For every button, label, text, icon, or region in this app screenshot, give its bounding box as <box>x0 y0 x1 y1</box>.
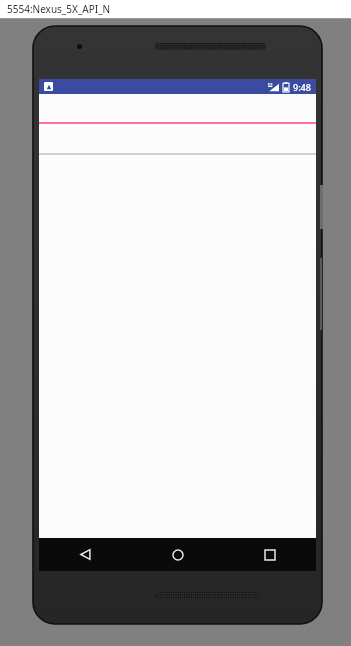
staticText: 5554:Nexus_5X_API_N <box>7 2 111 16</box>
staticText: 9:48 <box>293 81 311 93</box>
button[interactable]: Home <box>132 538 224 571</box>
button[interactable]: Back <box>39 538 132 571</box>
button[interactable]: Recents <box>224 538 316 571</box>
